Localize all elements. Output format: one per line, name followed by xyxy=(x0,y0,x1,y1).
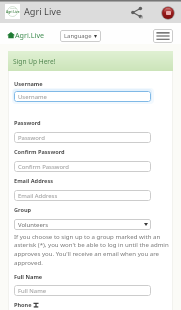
staticText: ···· xyxy=(12,14,15,17)
staticText: Full Name xyxy=(18,287,47,295)
staticText: Sign Up Here! xyxy=(13,57,56,66)
staticText: Full Name xyxy=(14,273,43,281)
button[interactable]: Menu xyxy=(153,29,173,43)
button[interactable]: Username xyxy=(14,91,151,102)
button[interactable]: Stop xyxy=(161,6,175,20)
staticText: Agri.Live xyxy=(15,30,45,40)
staticText: Username xyxy=(18,93,47,101)
staticText: Agri Live xyxy=(24,5,62,18)
staticText: Language xyxy=(64,32,92,40)
button[interactable]: Agri.Live xyxy=(7,29,45,40)
staticText: Email Address xyxy=(18,192,58,200)
staticText: Phone xyxy=(14,301,32,309)
staticText: Username xyxy=(14,80,43,88)
staticText: Confirm Password xyxy=(18,163,69,171)
button[interactable]: Share xyxy=(128,4,144,20)
button[interactable]: Email Address xyxy=(14,190,151,201)
button[interactable]: Volunteers xyxy=(14,219,151,230)
button[interactable]: Password xyxy=(14,132,151,143)
staticText: Email Address xyxy=(14,177,54,185)
staticText: Group xyxy=(14,206,32,214)
staticText: Password xyxy=(18,134,45,142)
button[interactable]: Language xyxy=(60,30,101,42)
button[interactable]: Confirm Password xyxy=(14,161,151,172)
button[interactable]: Full Name xyxy=(14,285,151,296)
staticText: LOCAL xyxy=(10,7,17,10)
staticText: Password xyxy=(14,119,41,127)
staticText: Agri Live xyxy=(6,10,20,14)
staticText: Volunteers xyxy=(18,221,49,229)
staticText: If you choose to sign up to a group mark… xyxy=(14,232,170,267)
staticText: Confirm Password xyxy=(14,148,65,156)
